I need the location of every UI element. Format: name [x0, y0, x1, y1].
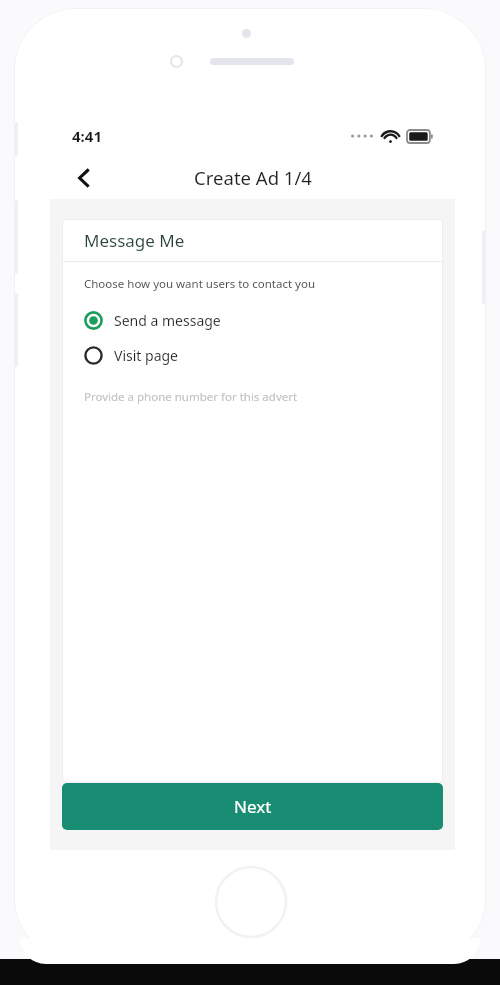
- staticText: Choose how you want users to contact you: [84, 276, 316, 292]
- staticText: Send a message: [114, 311, 221, 330]
- staticText: Message Me: [84, 229, 185, 252]
- button[interactable]: Send a message: [84, 306, 421, 334]
- staticText: Visit page: [114, 346, 178, 365]
- staticText: Next: [234, 795, 272, 818]
- button[interactable]: Back: [62, 156, 106, 199]
- button[interactable]: Next: [62, 783, 443, 830]
- staticText: Provide a phone number for this advert: [84, 389, 298, 405]
- staticText: 4:41: [72, 126, 102, 146]
- button[interactable]: Visit page: [84, 341, 421, 369]
- staticText: Create Ad 1/4: [194, 165, 312, 190]
